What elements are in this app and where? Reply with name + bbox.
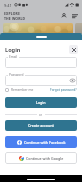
staticText: Remember me — [11, 88, 34, 92]
staticText: Password — [9, 73, 24, 77]
button[interactable]: Remember me — [5, 88, 34, 92]
button[interactable]: Login — [5, 97, 77, 108]
staticText: or — [39, 113, 43, 117]
staticText: Continue with Google — [26, 156, 64, 161]
button[interactable]: Create account — [5, 120, 77, 131]
button[interactable]: Close — [69, 45, 78, 54]
button[interactable]: Forgot password? — [50, 88, 77, 92]
staticText: EXPLORE — [4, 11, 20, 16]
staticText: 9:41 — [4, 3, 12, 8]
button[interactable] — [5, 75, 77, 86]
button[interactable]: Account — [60, 12, 68, 20]
staticText: THE WORLD — [4, 16, 26, 21]
staticText: Create account — [28, 123, 54, 128]
button[interactable] — [5, 57, 77, 68]
staticText: Email — [9, 55, 18, 59]
button[interactable]: Menu — [71, 12, 79, 20]
button[interactable]: Continue with Google — [5, 152, 77, 164]
button[interactable]: Continue with Facebook — [5, 136, 77, 148]
staticText: Login — [36, 100, 46, 105]
staticText: Continue with Facebook — [24, 140, 66, 145]
staticText: Login — [5, 46, 21, 54]
